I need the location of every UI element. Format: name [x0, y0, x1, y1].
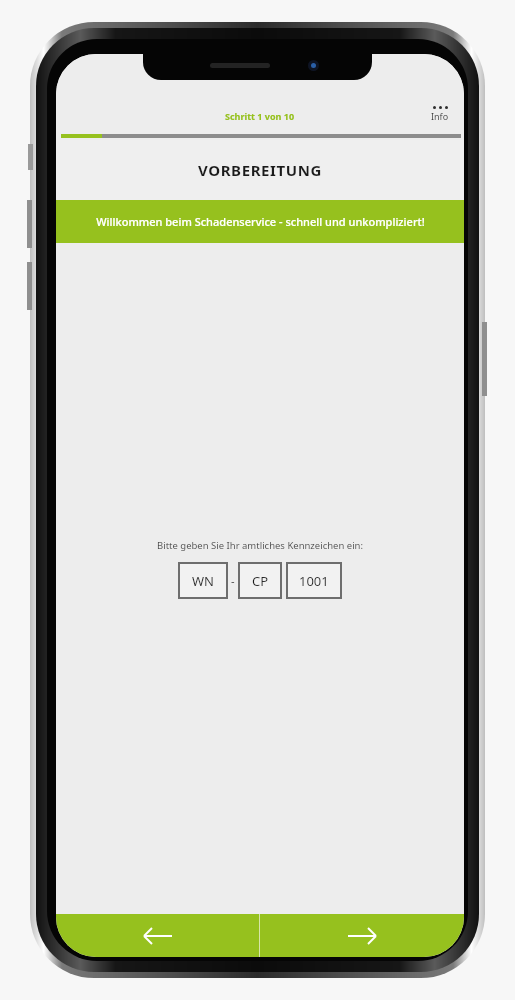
staticText: -: [231, 573, 235, 588]
staticText: WN: [192, 572, 214, 590]
button[interactable]: WN: [178, 562, 228, 599]
staticText: CP: [252, 572, 269, 590]
staticText: Bitte geben Sie Ihr amtliches Kennzeiche…: [157, 539, 363, 552]
button[interactable]: CP: [238, 562, 282, 599]
staticText: Info: [431, 110, 449, 122]
button[interactable]: 1001: [286, 562, 342, 599]
staticText: Schritt 1 von 10: [225, 110, 295, 122]
staticText: 1001: [299, 572, 329, 590]
button[interactable]: Weiter: [260, 914, 464, 957]
button[interactable]: Zurück: [56, 914, 259, 957]
button[interactable]: Info: [427, 104, 453, 124]
staticText: Willkommen beim Schadenservice - schnell…: [96, 214, 425, 229]
staticText: VORBEREITUNG: [198, 160, 323, 180]
